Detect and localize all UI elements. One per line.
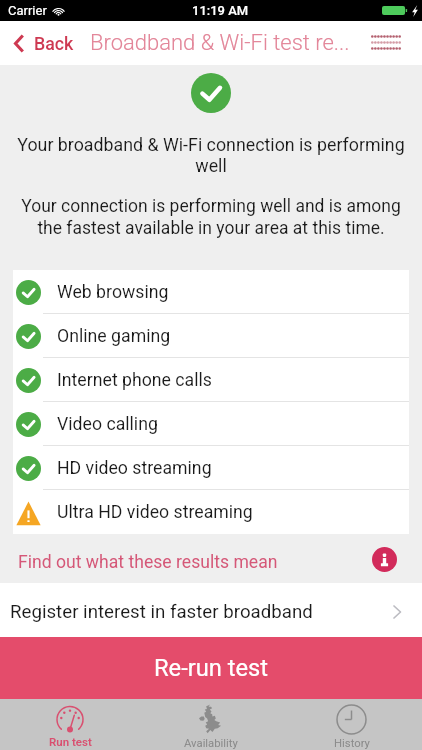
staticText: Run test <box>49 735 92 748</box>
staticText: 11:19 AM <box>192 3 249 18</box>
button[interactable]: Internet phone calls <box>13 358 409 402</box>
staticText: Your broadband & Wi-Fi connection is per… <box>12 134 410 177</box>
staticText: Find out what these results mean <box>18 552 278 573</box>
button[interactable]: Register interest in faster broadband <box>0 583 422 637</box>
button[interactable]: Re-run test <box>0 637 422 699</box>
staticText: History <box>334 737 370 750</box>
staticText: Web browsing <box>57 282 169 303</box>
button[interactable]: Menu <box>358 25 422 61</box>
button[interactable]: Ultra HD video streaming <box>13 490 409 534</box>
staticText: Carrier <box>8 3 47 18</box>
button[interactable]: History <box>281 699 422 750</box>
button[interactable]: Web browsing <box>13 270 409 314</box>
button[interactable]: Online gaming <box>13 314 409 358</box>
staticText: Online gaming <box>57 326 171 347</box>
staticText: Internet phone calls <box>57 370 212 391</box>
staticText: Availability <box>184 737 238 750</box>
button[interactable]: HD video streaming <box>13 446 409 490</box>
button[interactable]: Availability <box>140 699 281 750</box>
staticText: Ultra HD video streaming <box>57 502 253 523</box>
staticText: Re-run test <box>154 654 269 682</box>
button[interactable]: Find out what these results mean <box>0 534 422 583</box>
button[interactable]: Back <box>0 21 80 65</box>
staticText: Register interest in faster broadband <box>10 601 313 623</box>
button[interactable]: Run test <box>0 699 140 750</box>
button[interactable]: Video calling <box>13 402 409 446</box>
staticText: Back <box>34 33 74 54</box>
staticText: Video calling <box>57 414 158 435</box>
staticText: Broadband & Wi-Fi test re... <box>90 30 350 56</box>
staticText: HD video streaming <box>57 458 212 479</box>
staticText: Your connection is performing well and i… <box>14 196 408 238</box>
